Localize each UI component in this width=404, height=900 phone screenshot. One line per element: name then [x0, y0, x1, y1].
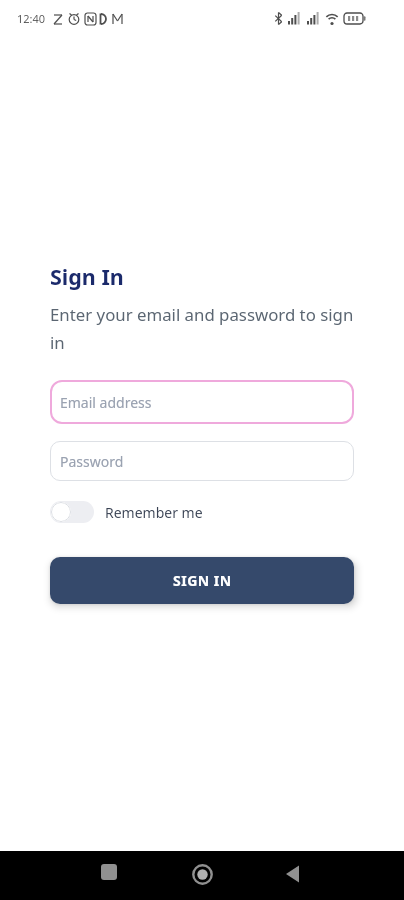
button[interactable]: Password	[50, 441, 354, 481]
staticText: SIGN IN	[173, 571, 232, 590]
staticText: Enter your email and password to sign in	[50, 303, 354, 354]
button[interactable]: SIGN IN	[50, 557, 354, 604]
staticText: Password	[60, 452, 124, 471]
staticText: 12:40	[17, 11, 46, 26]
staticText: Email address	[60, 393, 152, 412]
button[interactable]	[192, 864, 213, 885]
button[interactable]: Email address	[50, 380, 354, 424]
button[interactable]	[50, 501, 94, 523]
button[interactable]	[101, 864, 117, 880]
staticText: Sign In	[50, 262, 124, 291]
button[interactable]	[285, 864, 301, 884]
staticText: Remember me	[105, 503, 203, 522]
